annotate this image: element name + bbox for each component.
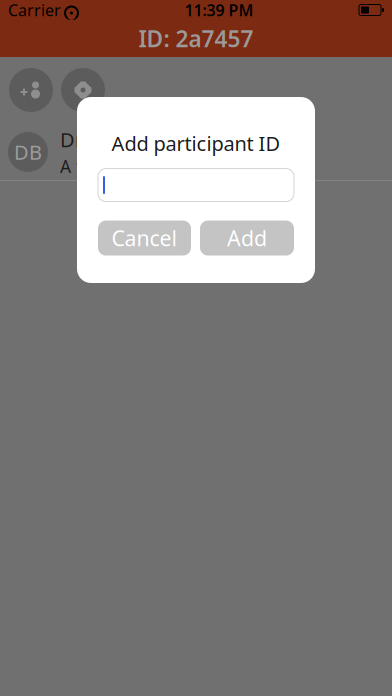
staticText: 11:39 PM (184, 0, 253, 21)
button[interactable]: Cancel (98, 221, 191, 256)
button[interactable]: Add (200, 221, 294, 256)
staticText: Cancel (111, 224, 177, 252)
staticText: Dr. (60, 126, 85, 153)
button[interactable]: Add participant (9, 68, 53, 112)
button[interactable]: Settings (61, 68, 105, 112)
staticText: Carrier (8, 0, 61, 21)
staticText: DB (14, 139, 42, 165)
staticText (59, 0, 65, 25)
staticText: Add participant ID (111, 130, 280, 157)
button[interactable]: DB (0, 124, 392, 180)
staticText: ID: 2a7457 (138, 23, 253, 53)
staticText: Add (227, 224, 267, 252)
staticText: A fe (60, 155, 92, 178)
